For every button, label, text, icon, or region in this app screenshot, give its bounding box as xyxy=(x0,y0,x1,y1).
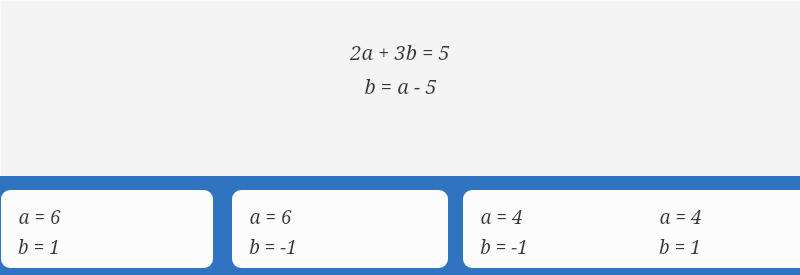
staticText: b = 1 xyxy=(18,234,60,260)
staticText: a = 4 xyxy=(659,204,702,230)
button[interactable]: a = 6 xyxy=(232,190,448,268)
staticText: b = a − 5 xyxy=(364,73,437,100)
staticText: 2a + 3b = 5 xyxy=(350,39,450,66)
staticText: a = 6 xyxy=(18,204,61,230)
staticText: b = 1 xyxy=(659,234,701,260)
staticText: b = −1 xyxy=(480,234,528,260)
staticText: b = −1 xyxy=(249,234,297,260)
staticText: a = 6 xyxy=(249,204,292,230)
button[interactable]: a = 6 xyxy=(1,190,213,268)
button[interactable]: a = 4 xyxy=(642,190,800,268)
button[interactable]: a = 4 xyxy=(463,190,678,268)
staticText: a = 4 xyxy=(480,204,523,230)
